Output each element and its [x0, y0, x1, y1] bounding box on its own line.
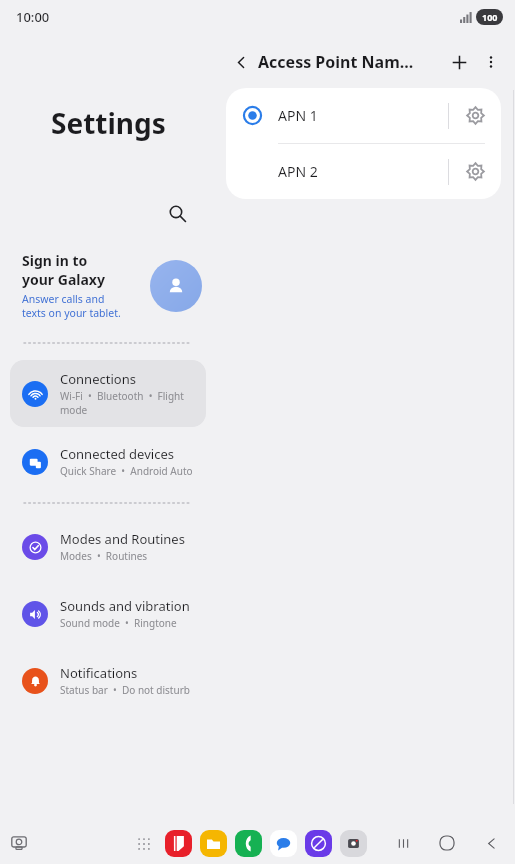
- staticText: Sign in to: [22, 251, 88, 270]
- button[interactable]: Internet: [305, 830, 332, 857]
- staticText: Answer calls and: [22, 292, 105, 306]
- staticText: Wi-Fi • Bluetooth • Flight mode: [60, 389, 196, 417]
- button[interactable]: Camera: [340, 830, 367, 857]
- staticText: your Galaxy: [22, 270, 105, 289]
- button[interactable]: Home: [433, 829, 461, 857]
- button[interactable]: Sign in to: [22, 251, 202, 320]
- button[interactable]: All apps: [131, 831, 157, 857]
- button[interactable]: My Files: [200, 830, 227, 857]
- staticText: Settings: [51, 104, 166, 142]
- button[interactable]: Connected devices: [10, 435, 206, 488]
- button[interactable]: Phone: [235, 830, 262, 857]
- staticText: Access Point Nam...: [258, 51, 443, 73]
- staticText: Sound mode • Ringtone: [60, 616, 177, 630]
- button[interactable]: Recent app: [6, 830, 32, 856]
- button[interactable]: Back: [226, 47, 256, 77]
- button[interactable]: Samsung Notes: [165, 830, 192, 857]
- staticText: 10:00: [16, 8, 50, 26]
- staticText: Connected devices: [60, 445, 174, 463]
- staticText: Sounds and vibration: [60, 597, 190, 615]
- button[interactable]: APN 2 settings: [449, 144, 501, 199]
- button[interactable]: Messages: [270, 830, 297, 857]
- button[interactable]: Add APN: [443, 46, 475, 78]
- button[interactable]: Back: [477, 829, 505, 857]
- button[interactable]: Connections: [10, 360, 206, 427]
- staticText: Notifications: [60, 664, 138, 682]
- button[interactable]: Sounds and vibration: [10, 587, 206, 640]
- button[interactable]: More options: [475, 46, 507, 78]
- button[interactable]: APN 2: [226, 144, 501, 199]
- button[interactable]: APN 1 settings: [449, 88, 501, 143]
- staticText: Modes • Routines: [60, 549, 148, 563]
- staticText: 100: [482, 11, 498, 23]
- button[interactable]: Notifications: [10, 654, 206, 707]
- button[interactable]: Modes and Routines: [10, 520, 206, 573]
- staticText: Connections: [60, 370, 136, 388]
- staticText: APN 2: [278, 162, 448, 181]
- staticText: Quick Share • Android Auto: [60, 464, 193, 478]
- button[interactable]: Search settings: [160, 196, 194, 230]
- button[interactable]: APN 1: [226, 88, 501, 143]
- staticText: Status bar • Do not disturb: [60, 683, 190, 697]
- button[interactable]: Recents: [389, 829, 417, 857]
- staticText: texts on your tablet.: [22, 306, 121, 320]
- staticText: Modes and Routines: [60, 530, 185, 548]
- staticText: APN 1: [278, 106, 448, 125]
